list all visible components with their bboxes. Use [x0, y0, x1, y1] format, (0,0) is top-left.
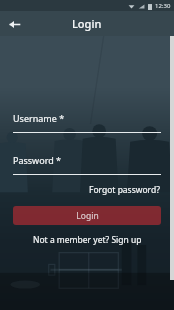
- button[interactable]: Back: [2, 12, 26, 36]
- button[interactable]: Username *: [13, 112, 65, 124]
- staticText: Login: [72, 16, 102, 31]
- button[interactable]: Login: [13, 206, 161, 225]
- button[interactable]: Password *: [13, 154, 62, 166]
- staticText: 12:30: [155, 2, 171, 10]
- staticText: Login: [76, 210, 99, 222]
- button[interactable]: Forgot password?: [88, 182, 161, 198]
- button[interactable]: Not a member yet? Sign up: [33, 232, 142, 248]
